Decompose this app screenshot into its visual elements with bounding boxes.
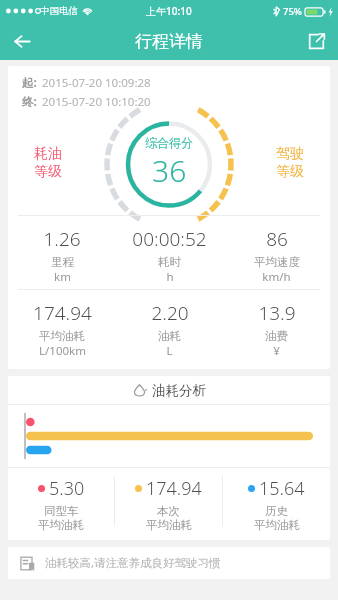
staticText: 油耗分析 [152, 382, 206, 399]
button[interactable]: 油耗较高,请注意养成良好驾驶习惯 [8, 547, 330, 579]
staticText: 等级 [34, 163, 62, 181]
staticText: 2.20 [151, 300, 189, 326]
staticText: 中国电信 [40, 5, 78, 17]
staticText: 2015-07-20 10:09:28 [42, 75, 151, 91]
staticText: 5.30 [49, 476, 85, 501]
staticText: 75% [283, 5, 302, 18]
staticText: 本次 [157, 504, 180, 518]
staticText: 耗油 [34, 145, 62, 163]
staticText: ¥ [273, 343, 280, 359]
staticText: km/h [262, 269, 291, 285]
staticText: 上午10:10 [146, 4, 192, 18]
staticText: 行程详情 [135, 31, 203, 52]
staticText: 174.94 [146, 476, 202, 501]
staticText: 1.26 [43, 226, 81, 252]
staticText: 历史 [265, 504, 288, 518]
staticText: 13.9 [258, 300, 296, 326]
button[interactable]: Back [0, 22, 44, 60]
staticText: L [166, 343, 173, 359]
staticText: 驾驶 [276, 145, 304, 163]
staticText: 耗时 [158, 255, 181, 269]
staticText: 油耗较高,请注意养成良好驾驶习惯 [45, 555, 221, 571]
staticText: 86 [266, 226, 288, 252]
staticText: 174.94 [33, 300, 92, 326]
staticText: 平均速度 [254, 255, 300, 269]
staticText: 里程 [51, 255, 74, 269]
staticText: km [54, 269, 71, 285]
staticText: 15.64 [259, 476, 305, 501]
staticText: 起: [22, 75, 37, 91]
staticText: 等级 [276, 163, 304, 181]
staticText: 00:00:52 [132, 226, 207, 252]
button[interactable]: Share [294, 22, 338, 60]
staticText: 同型车 [44, 504, 79, 518]
staticText: 36 [152, 150, 187, 191]
staticText: 终: [22, 94, 37, 110]
staticText: 油耗 [158, 329, 181, 343]
staticText: 综合得分 [145, 135, 193, 150]
staticText: 2015-07-20 10:10:20 [42, 94, 151, 110]
staticText: 平均油耗 [38, 518, 84, 532]
staticText: h [166, 269, 174, 285]
staticText: 油费 [265, 329, 288, 343]
staticText: 平均油耗 [254, 518, 300, 532]
staticText: 平均油耗 [39, 329, 85, 343]
staticText: L/100km [39, 343, 86, 359]
staticText: 平均油耗 [146, 518, 192, 532]
